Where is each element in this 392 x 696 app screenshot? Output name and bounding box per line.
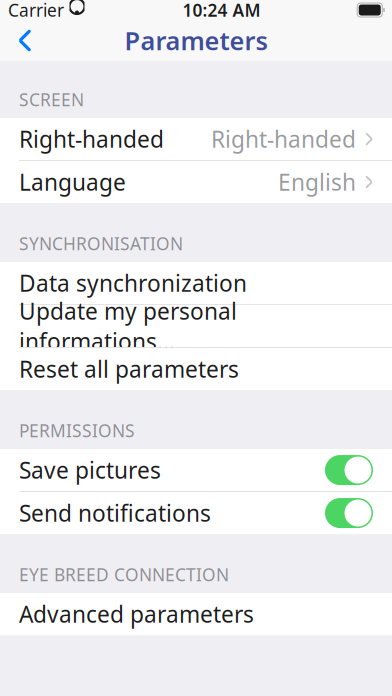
button[interactable]: Right-handed <box>0 118 392 160</box>
staticText: SYNCHRONISATION <box>19 232 183 255</box>
staticText: Carrier <box>8 0 64 21</box>
staticText: Save pictures <box>19 455 161 485</box>
staticText: English <box>278 167 356 197</box>
staticText: Parameters <box>124 24 267 57</box>
button[interactable]: Data synchronization <box>0 262 392 304</box>
button[interactable]: Back <box>0 20 46 60</box>
staticText: Update my personal informations... <box>19 296 237 356</box>
staticText: PERMISSIONS <box>19 419 135 442</box>
button[interactable]: Send notifications <box>0 492 392 534</box>
button[interactable]: Save pictures <box>0 449 392 491</box>
button[interactable]: Advanced parameters <box>0 593 392 635</box>
button[interactable]: Reset all parameters <box>0 348 392 390</box>
staticText: SCREEN <box>19 88 84 111</box>
staticText: EYE BREED CONNECTION <box>19 563 229 586</box>
staticText: Data synchronization <box>19 268 247 298</box>
staticText: Language <box>19 167 126 197</box>
button[interactable]: Update my personal informations... <box>0 305 392 347</box>
button[interactable]: Language <box>0 161 392 203</box>
staticText: Advanced parameters <box>19 599 254 629</box>
staticText: 10:24 AM <box>182 0 260 21</box>
staticText: Right-handed <box>19 124 164 154</box>
staticText: Right-handed <box>211 124 356 154</box>
staticText: Send notifications <box>19 498 211 528</box>
staticText: Reset all parameters <box>19 354 239 384</box>
